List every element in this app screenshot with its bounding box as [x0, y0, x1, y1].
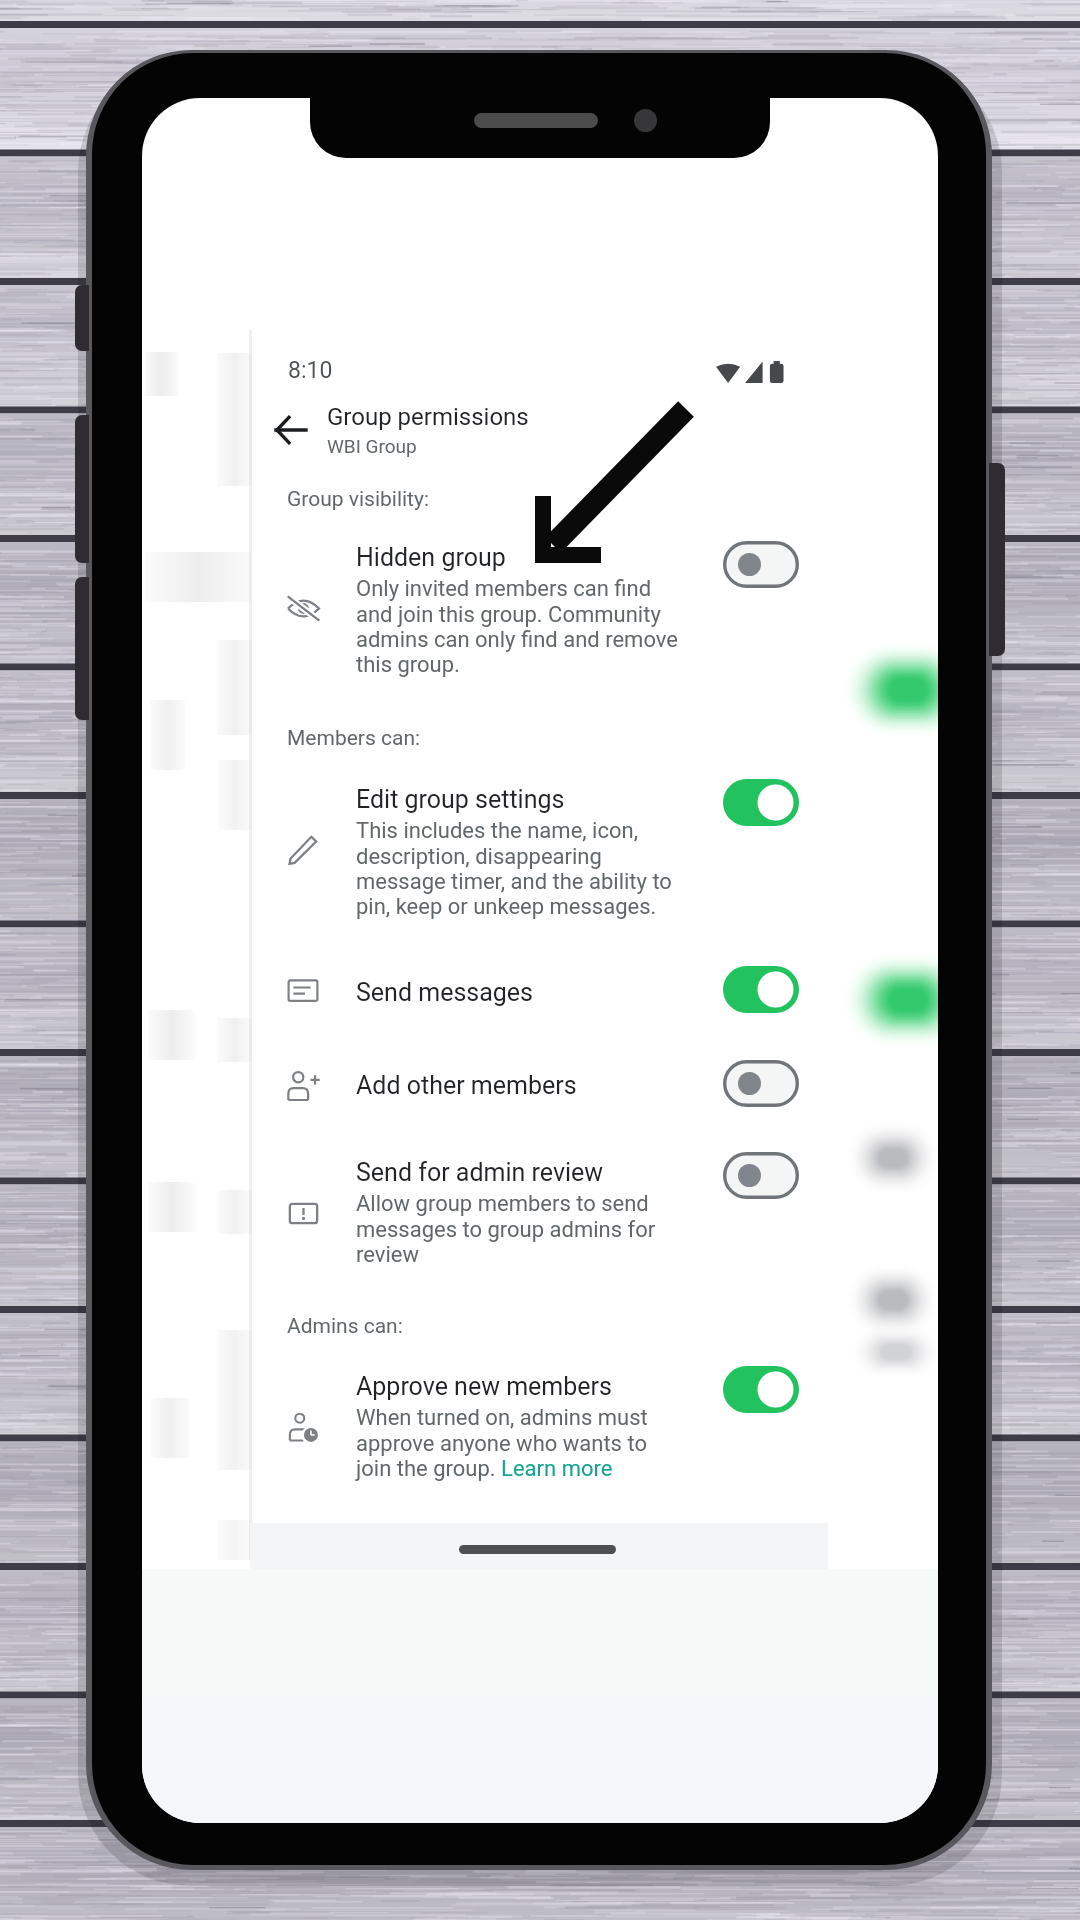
staticText: Only invited members can find and join t…	[356, 576, 680, 677]
staticText: Edit group settings	[356, 785, 565, 814]
staticText: Admins can:	[287, 1314, 403, 1339]
button[interactable]	[142, 768, 938, 933]
button[interactable]: Switch off	[723, 541, 799, 588]
staticText: When turned on, admins must approve anyo…	[356, 1405, 680, 1481]
button[interactable]	[142, 1048, 938, 1118]
button[interactable]: Switch on	[723, 966, 799, 1013]
button[interactable]: Switch on	[723, 779, 799, 826]
button[interactable]	[142, 525, 938, 690]
button[interactable]: Switch off	[723, 1152, 799, 1199]
button[interactable]: Switch off	[723, 1060, 799, 1107]
staticText: 8:10	[288, 357, 333, 384]
button[interactable]: Switch on	[723, 1366, 799, 1413]
staticText: Approve new members	[356, 1372, 612, 1401]
staticText: Members can:	[287, 726, 421, 751]
staticText: Hidden group	[356, 543, 506, 572]
staticText: Group visibility:	[287, 487, 429, 512]
staticText: Group permissions	[327, 403, 529, 431]
button[interactable]	[142, 1355, 938, 1495]
staticText: Send messages	[356, 978, 533, 1007]
button[interactable]: Learn more	[500, 1454, 616, 1482]
staticText: This includes the name, icon, descriptio…	[356, 818, 680, 919]
button[interactable]	[142, 955, 938, 1025]
staticText: Allow group members to send messages to …	[356, 1191, 680, 1267]
staticText: WBI Group	[327, 435, 417, 457]
staticText: Add other members	[356, 1071, 577, 1100]
button[interactable]	[142, 1140, 938, 1280]
button[interactable]: Back	[262, 402, 318, 458]
staticText: Send for admin review	[356, 1158, 604, 1187]
